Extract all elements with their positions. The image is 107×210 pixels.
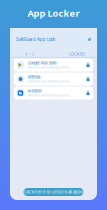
staticText: A - Z <box>25 52 34 56</box>
button[interactable]: Google Play Store <box>14 58 93 71</box>
staticText: Prevent uninstalling of this app. <box>27 93 72 97</box>
staticText: Weather <box>27 89 41 93</box>
staticText: SafeGuard App Lock <box>16 37 55 42</box>
button[interactable]: Weather <box>14 86 93 99</box>
staticText: LOCKED <box>69 52 85 56</box>
staticText: Settings <box>27 75 40 79</box>
staticText: Click here to unlock all apps <box>24 189 83 195</box>
staticText: App Locker <box>27 7 79 19</box>
staticText: Prevent uninstalling of this app. <box>27 65 72 69</box>
button[interactable]: Settings <box>14 72 93 85</box>
staticText: Google Play Store <box>27 61 56 65</box>
staticText: Prevent uninstalling of this app. <box>27 79 72 83</box>
button[interactable]: Click here to unlock all apps <box>23 188 83 196</box>
